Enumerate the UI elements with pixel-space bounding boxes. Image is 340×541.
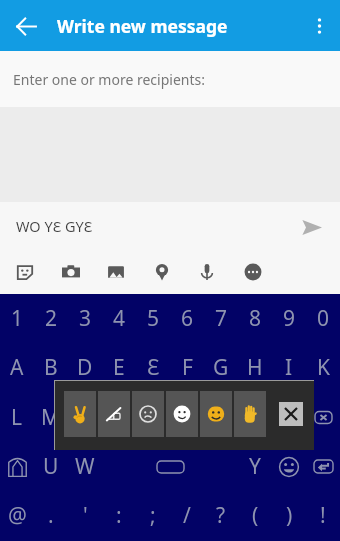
staticText: F [182,353,193,382]
staticText: H [247,353,263,382]
button[interactable]: Happy [200,391,232,437]
staticText: / [183,501,191,530]
button[interactable]: O [102,393,136,442]
staticText: @ [8,501,27,530]
staticText: O [111,403,128,432]
button[interactable]: I [272,343,306,392]
button[interactable]: Victory [64,391,96,437]
staticText: ? [216,501,226,530]
button[interactable]: K [306,343,340,392]
button[interactable]: M [34,393,68,442]
button[interactable]: ( [238,491,272,540]
button[interactable]: Camera [53,254,89,290]
button[interactable]: ' [68,491,102,540]
staticText: ' [83,501,88,530]
button[interactable]: Enter [306,442,340,491]
button[interactable]: More options [296,4,340,48]
button[interactable]: @ [0,491,34,540]
staticText: Y [249,452,261,481]
button[interactable]: ? [204,491,238,540]
staticText: P [181,403,194,432]
staticText: 6 [181,304,194,333]
button[interactable]: Location [144,254,180,290]
staticText: M [41,403,61,432]
button[interactable]: Back [2,2,50,50]
button[interactable]: : [102,491,136,540]
button[interactable]: F [170,343,204,392]
button[interactable]: P [170,393,204,442]
button[interactable]: ; [136,491,170,540]
staticText: 1 [11,304,24,333]
button[interactable]: B [34,343,68,392]
staticText: K [317,353,330,382]
staticText: D [77,353,93,382]
button[interactable]: G [204,343,238,392]
button[interactable]: 8 [238,294,272,343]
button[interactable]: Backspace [306,393,340,442]
button[interactable]: 4 [102,294,136,343]
staticText: 7 [215,304,228,333]
staticText: B [44,353,58,382]
staticText: Write new message [57,14,228,38]
button[interactable]: Gallery [98,254,134,290]
button[interactable]: H [238,343,272,392]
staticText: N [77,403,93,432]
button[interactable]: Hand [234,391,266,437]
button[interactable]: W [68,442,102,491]
button[interactable]: More [235,254,271,290]
staticText: L [11,403,23,432]
staticText: ( [252,501,259,530]
button[interactable]: L [0,393,34,442]
staticText: WO YƐ GYƐ [16,216,93,236]
staticText: ) [286,501,293,530]
button[interactable]: T [272,393,306,442]
button[interactable]: Emoji [272,442,306,491]
staticText: I [285,353,293,382]
button[interactable]: . [34,491,68,540]
button[interactable]: ) [272,491,306,540]
button[interactable]: N [68,393,102,442]
button[interactable]: 7 [204,294,238,343]
staticText: Enter one or more recipients: [13,70,205,89]
button[interactable]: 1 [0,294,34,343]
button[interactable]: D [68,343,102,392]
button[interactable]: 3 [68,294,102,343]
button[interactable]: ! [306,491,340,540]
button[interactable]: Neutral [166,391,198,437]
button[interactable]: Ɛ [136,343,170,392]
staticText: R [214,403,228,432]
staticText: A [10,353,24,382]
button[interactable]: No photo [98,391,130,437]
staticText: 8 [249,304,262,333]
button[interactable]: / [170,491,204,540]
button[interactable]: Sticker [7,254,43,290]
staticText: 2 [45,304,58,333]
button[interactable]: Space [102,442,238,491]
staticText: 0 [317,304,330,333]
button[interactable]: U [34,442,68,491]
button[interactable]: R [204,393,238,442]
button[interactable]: S [238,393,272,442]
button[interactable]: Send [292,207,332,247]
staticText: . [48,501,54,530]
staticText: 9 [283,304,296,333]
button[interactable]: 9 [272,294,306,343]
button[interactable]: Symbols [0,442,34,491]
staticText: : [116,501,122,530]
button[interactable]: E [102,343,136,392]
button[interactable]: 5 [136,294,170,343]
button[interactable]: Voice message [189,254,225,290]
staticText: U [43,452,59,481]
button[interactable]: Sad [132,391,164,437]
button[interactable]: 6 [170,294,204,343]
button[interactable]: 0 [306,294,340,343]
button[interactable]: Close [279,402,303,426]
button[interactable]: Y [238,442,272,491]
staticText: W [75,452,95,481]
staticText: ! [320,501,326,530]
button[interactable]: Ɔ [136,393,170,442]
button[interactable]: A [0,343,34,392]
button[interactable]: 2 [34,294,68,343]
staticText: E [113,353,125,382]
staticText: 3 [79,304,92,333]
